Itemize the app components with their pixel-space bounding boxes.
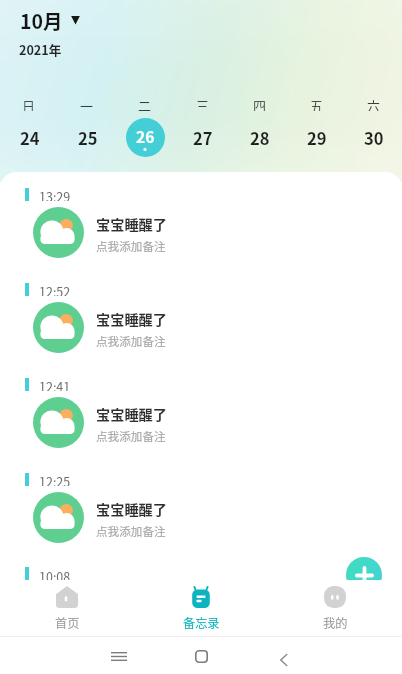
button[interactable]: 13:29 [0,181,402,276]
staticText: 二 [138,96,152,111]
staticText: 28 [250,126,270,150]
button[interactable]: 24 [10,118,49,157]
staticText: 12:41 [39,377,71,391]
staticText: 27 [193,126,213,150]
staticText: 日 [22,96,36,111]
button[interactable]: 首页 [0,580,134,637]
staticText: 一 [80,96,94,111]
button[interactable]: Menu [111,652,127,661]
button[interactable]: 12:52 [0,276,402,371]
button[interactable]: 10月 [20,6,79,34]
button[interactable]: 备忘录 [134,580,268,637]
staticText: 五 [310,96,324,111]
staticText: 六 [367,96,381,111]
staticText: 三 [196,96,210,111]
button[interactable]: 27 [183,118,222,157]
staticText: 13:29 [39,187,71,201]
staticText: 宝宝睡醒了 [96,309,167,330]
staticText: 点我添加备注 [96,333,166,350]
staticText: 24 [20,126,40,150]
staticText: 12:52 [39,282,71,296]
button[interactable]: 12:41 [0,371,402,466]
staticText: 29 [307,126,327,150]
button[interactable]: Home [195,650,208,663]
staticText: 10:08 [39,567,71,580]
button[interactable]: 29 [297,118,336,157]
staticText: 宝宝睡醒了 [96,499,167,520]
staticText: 点我添加备注 [96,428,166,445]
staticText: 点我添加备注 [96,523,166,540]
staticText: 30 [364,126,384,150]
staticText: 10月 [20,6,63,34]
staticText: 26 [136,125,155,147]
button[interactable]: 28 [240,118,279,157]
button[interactable]: 12:25 [0,466,402,561]
button[interactable]: 25 [68,118,107,157]
staticText: 四 [253,96,267,111]
staticText: 2021年 [19,40,62,58]
button[interactable]: 10:08 [0,561,402,580]
staticText: 备忘录 [183,614,220,632]
staticText: 25 [78,126,98,150]
staticText: 点我添加备注 [96,238,166,255]
button[interactable]: 30 [354,118,393,157]
button[interactable]: Add record [346,557,382,580]
staticText: 宝宝睡醒了 [96,404,167,425]
button[interactable]: 我的 [268,580,402,637]
staticText: 首页 [55,614,80,632]
staticText: 12:25 [39,472,71,486]
staticText: 我的 [323,614,348,632]
staticText: 宝宝睡醒了 [96,214,167,235]
button[interactable]: Back [280,654,288,666]
button[interactable]: 26 [126,118,165,157]
